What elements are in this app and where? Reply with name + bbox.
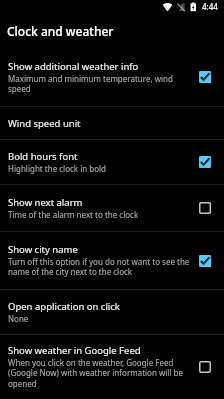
staticText: Clock and weather — [7, 23, 114, 39]
staticText: Maximum and minimum temperature, wind sp… — [8, 73, 192, 95]
staticText: Highlight the clock in bold — [8, 163, 107, 174]
staticText: Open application on click — [8, 300, 120, 313]
button[interactable]: Show next alarm — [0, 185, 224, 231]
button[interactable]: Wind speed unit — [0, 107, 224, 139]
staticText: Show additional weather info — [8, 60, 139, 73]
staticText: Wind speed unit — [8, 117, 81, 130]
staticText: When you click on the weather, Google Fe… — [8, 357, 192, 390]
staticText: Bold hours font — [8, 150, 78, 163]
staticText: Show city name — [8, 243, 78, 256]
button[interactable]: Show additional weather info — [0, 48, 224, 106]
button[interactable]: Show city name — [0, 232, 224, 289]
staticText: None — [8, 313, 29, 324]
staticText: Show next alarm — [8, 196, 83, 209]
staticText: Show weather in Google Feed — [8, 344, 141, 357]
button[interactable]: Bold hours font — [0, 140, 224, 184]
button[interactable]: Show weather in Google Feed — [0, 335, 224, 399]
staticText: Turn off this option if you do not want … — [8, 256, 192, 278]
staticText: 4:44 — [202, 1, 218, 12]
staticText: Time of the alarm next to the clock — [8, 209, 139, 220]
button[interactable]: Open application on click — [0, 290, 224, 334]
